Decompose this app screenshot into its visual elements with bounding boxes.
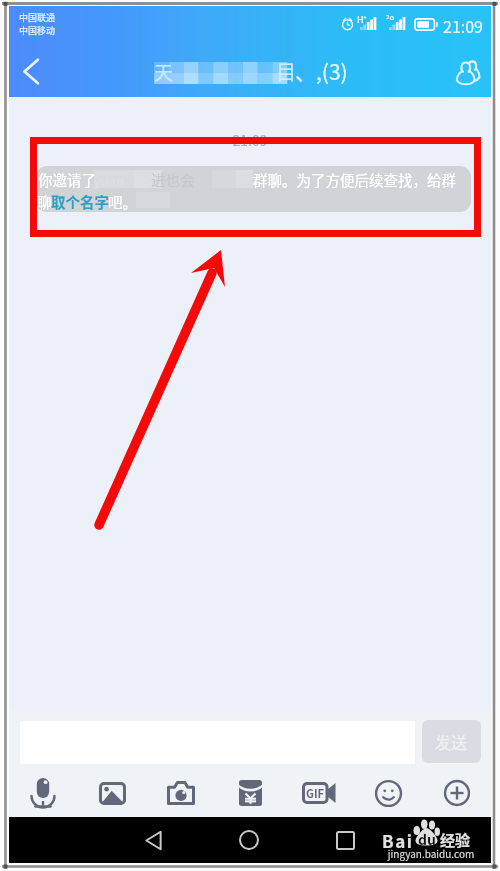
staticText: 发送: [435, 730, 468, 753]
button[interactable]: Back: [9, 46, 53, 97]
button[interactable]: Photo: [88, 770, 136, 816]
button[interactable]: 你邀请了: [36, 166, 471, 212]
staticText: 21:09: [443, 14, 483, 37]
button[interactable]: Camera: [157, 770, 205, 816]
staticText: 进也会: [151, 169, 195, 190]
staticText: 吧。: [108, 191, 137, 212]
staticText: 聊: [37, 191, 52, 212]
button[interactable]: Voice message: [19, 770, 67, 816]
staticText: H⁺: [357, 13, 367, 26]
button[interactable]: Back: [131, 818, 175, 862]
button[interactable]: Group members: [445, 46, 491, 97]
staticText: 中国移动: [19, 24, 56, 37]
staticText: du: [418, 829, 436, 849]
staticText: 你邀请了: [38, 169, 96, 190]
staticText: 取个名字: [51, 191, 109, 212]
staticText: jingyan.baidu.com: [381, 846, 481, 860]
staticText: 中国联通: [19, 11, 56, 24]
button[interactable]: 发送: [422, 720, 481, 763]
staticText: 目: [276, 57, 296, 86]
button[interactable]: Emoji: [364, 770, 412, 816]
staticText: 、,(3): [295, 56, 348, 86]
button[interactable]: Recents: [323, 818, 367, 862]
staticText: 经验: [440, 829, 471, 851]
staticText: Bai: [382, 828, 414, 853]
staticText: 天: [154, 58, 174, 86]
button[interactable]: More: [433, 770, 481, 816]
button[interactable]: GIF: [295, 770, 343, 816]
staticText: 21:09: [9, 130, 491, 150]
staticText: 群聊。为了方便后续查找，给群: [253, 169, 456, 190]
staticText: ²ᴳ: [386, 13, 394, 26]
staticText: yuan: [94, 171, 124, 190]
button[interactable]: Red packet: [226, 770, 274, 816]
staticText: GIF: [306, 785, 324, 801]
button[interactable]: Home: [227, 818, 271, 862]
